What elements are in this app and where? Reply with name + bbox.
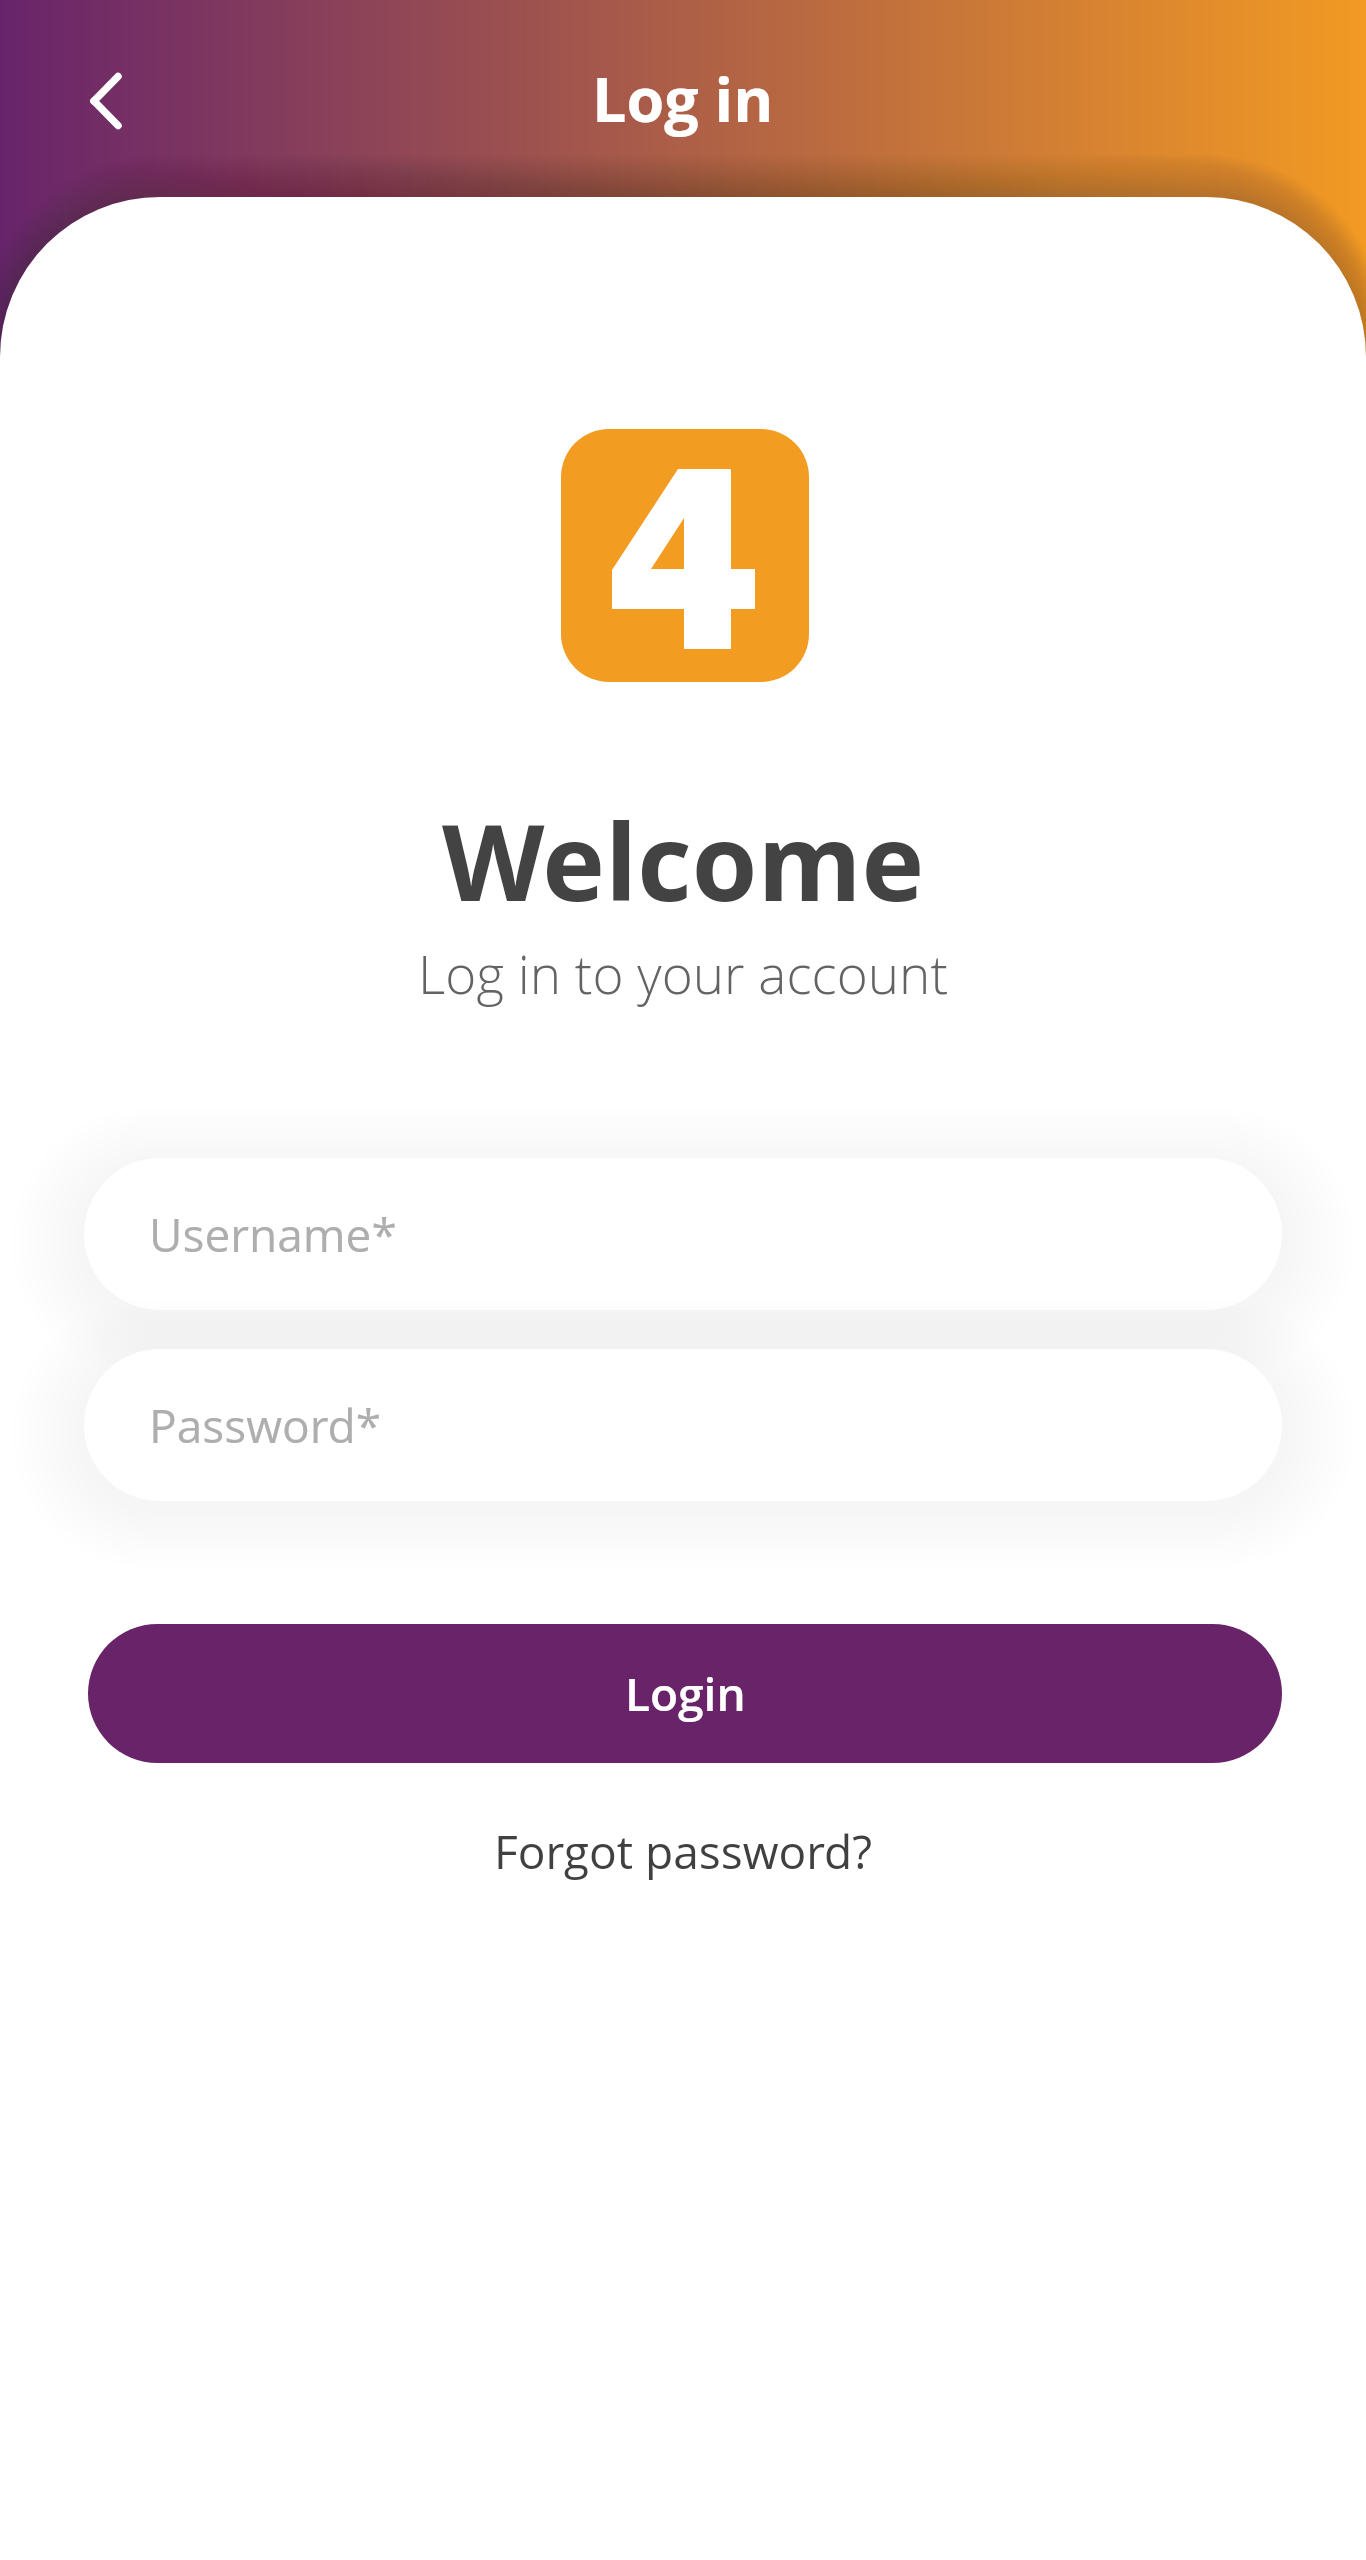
button[interactable]: Back: [60, 50, 160, 150]
staticText: Log in to your account: [418, 937, 949, 1009]
staticText: Welcome: [442, 788, 925, 932]
staticText: Login: [625, 1662, 746, 1725]
button[interactable]: Login: [88, 1624, 1282, 1763]
button[interactable]: Password*: [84, 1349, 1282, 1501]
staticText: Password*: [149, 1394, 382, 1457]
button[interactable]: Forgot password?: [454, 1806, 913, 1897]
staticText: Username*: [149, 1203, 397, 1266]
staticText: Log in: [592, 57, 774, 140]
staticText: Forgot password?: [494, 1820, 873, 1883]
button[interactable]: Username*: [84, 1158, 1282, 1310]
